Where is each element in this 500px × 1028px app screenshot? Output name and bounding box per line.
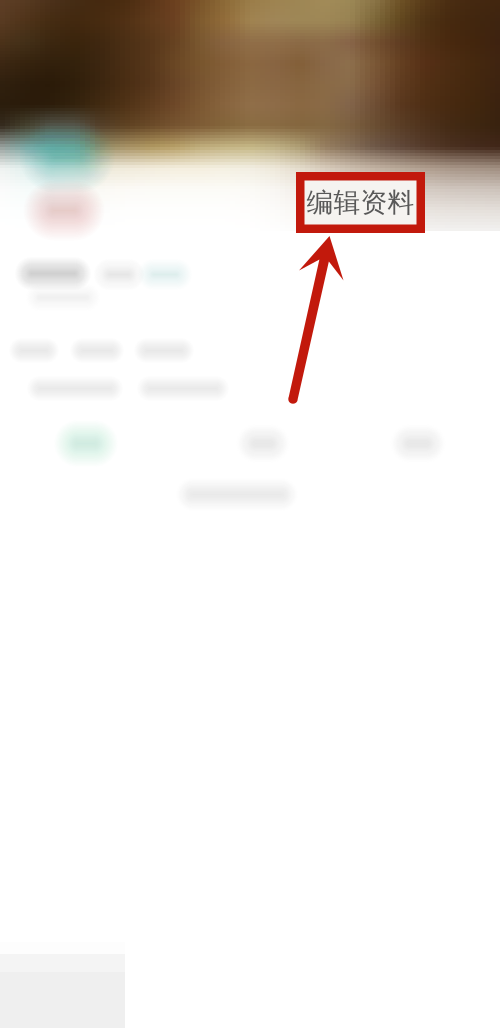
staticText: 编辑资料 xyxy=(306,186,414,219)
button[interactable]: 编辑资料 xyxy=(296,172,425,233)
